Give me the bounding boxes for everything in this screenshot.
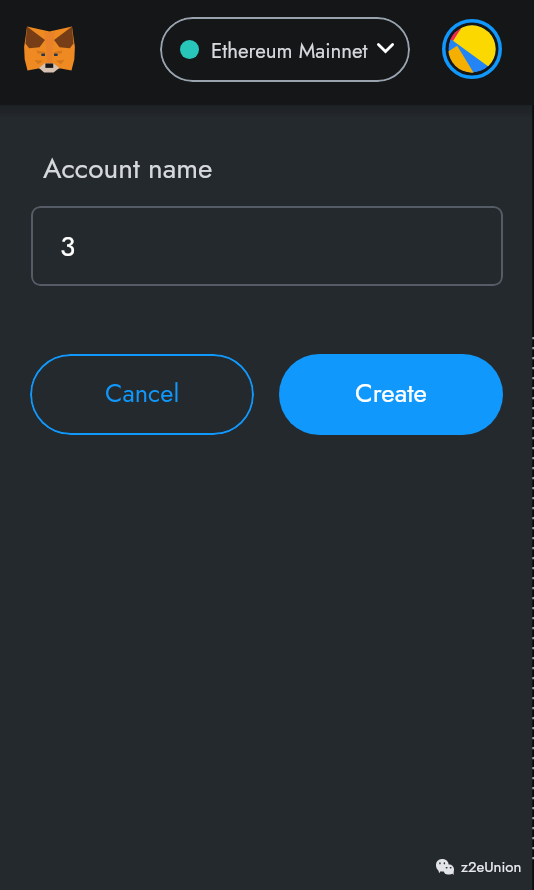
staticText: Create (355, 374, 427, 412)
staticText: Cancel (105, 375, 180, 412)
button[interactable]: 3 (31, 206, 503, 286)
staticText: Account name (43, 148, 213, 188)
button[interactable]: Account avatar (442, 19, 502, 79)
button[interactable]: Cancel (30, 354, 254, 435)
button[interactable]: Create (279, 354, 503, 435)
button[interactable]: MetaMask (24, 26, 75, 73)
button[interactable]: Ethereum Mainnet (160, 17, 410, 82)
staticText: z2eUnion (461, 856, 522, 878)
staticText: 3 (60, 226, 76, 266)
staticText: Ethereum Mainnet (211, 36, 368, 66)
